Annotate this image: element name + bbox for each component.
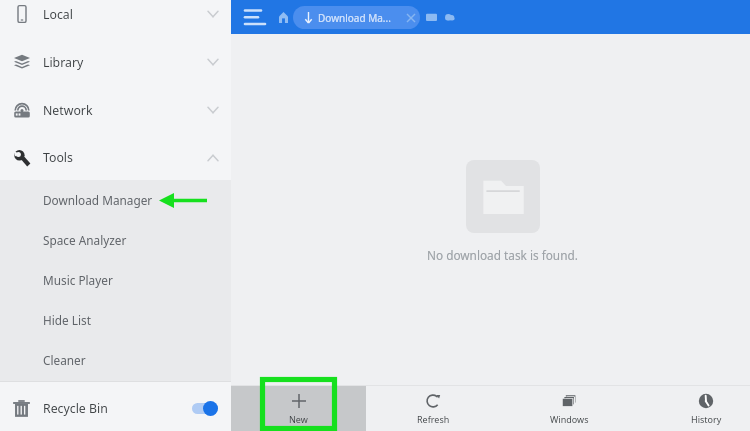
- button[interactable]: Local: [0, 0, 231, 28]
- staticText: Cleaner: [43, 352, 86, 368]
- staticText: Space Analyzer: [43, 232, 127, 248]
- button[interactable]: Home: [274, 0, 292, 34]
- button[interactable]: Library: [0, 38, 231, 86]
- staticText: Music Player: [43, 272, 113, 288]
- button[interactable]: Tools: [0, 135, 231, 180]
- staticText: Tools: [43, 149, 73, 166]
- button[interactable]: Cleaner: [0, 340, 231, 380]
- button[interactable]: Close tab: [403, 10, 419, 26]
- button[interactable]: Windows: [422, 8, 440, 26]
- button[interactable]: Cloud: [441, 8, 459, 26]
- button[interactable]: Hide List: [0, 300, 231, 340]
- button[interactable]: Download Manager: [0, 180, 231, 220]
- staticText: Download Manager: [43, 192, 153, 208]
- staticText: Local: [43, 6, 73, 23]
- button[interactable]: Recycle Bin: [0, 384, 231, 431]
- button[interactable]: Music Player: [0, 260, 231, 300]
- button[interactable]: Menu: [245, 0, 266, 34]
- button[interactable]: Network: [0, 86, 231, 134]
- staticText: History: [691, 413, 722, 425]
- staticText: No download task is found.: [427, 247, 578, 263]
- staticText: Network: [43, 102, 93, 119]
- button[interactable]: Refresh: [378, 386, 488, 431]
- staticText: Windows: [550, 413, 589, 425]
- button[interactable]: New: [231, 386, 366, 431]
- staticText: Download Ma...: [318, 11, 391, 25]
- button[interactable]: Windows: [514, 386, 624, 431]
- staticText: New: [289, 413, 308, 425]
- button[interactable]: Space Analyzer: [0, 220, 231, 260]
- button[interactable]: History: [651, 386, 750, 431]
- staticText: Hide List: [43, 312, 91, 328]
- staticText: Library: [43, 54, 84, 71]
- button[interactable]: Download Ma...: [293, 6, 420, 29]
- staticText: Refresh: [417, 413, 450, 425]
- staticText: Recycle Bin: [43, 400, 108, 417]
